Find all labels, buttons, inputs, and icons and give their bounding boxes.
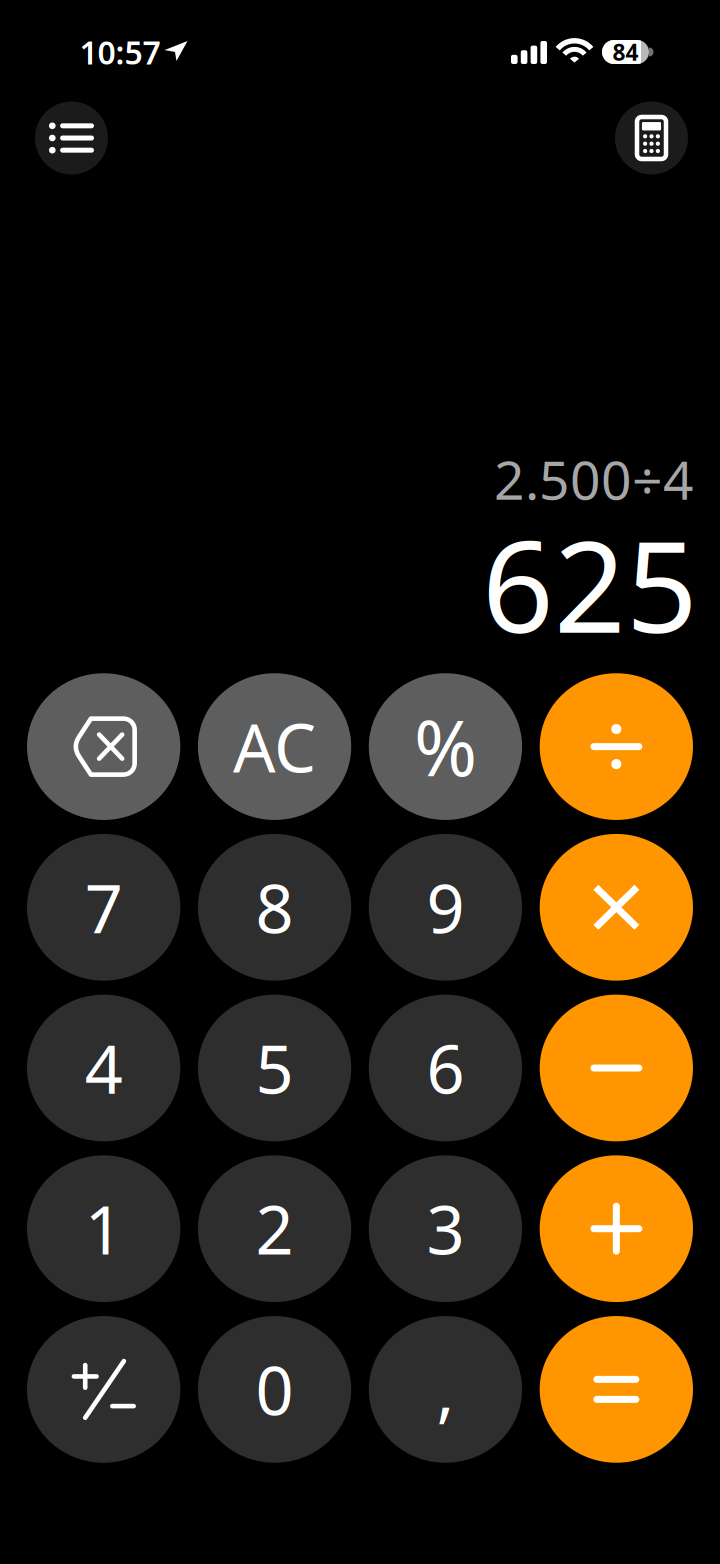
staticText: 3	[426, 1184, 464, 1273]
button[interactable]: 8	[198, 834, 351, 981]
staticText: 8	[256, 863, 294, 951]
button[interactable]: %	[369, 673, 522, 820]
staticText: 625	[482, 501, 698, 667]
staticText: 6	[426, 1024, 464, 1112]
button[interactable]: 5	[198, 995, 351, 1141]
staticText: 10:57	[79, 31, 160, 73]
staticText: 4	[85, 1024, 123, 1112]
button[interactable]: Add	[540, 1155, 693, 1302]
button[interactable]: Plus Minus	[27, 1316, 180, 1463]
button[interactable]: 7	[27, 834, 180, 981]
button[interactable]: Multiply	[540, 834, 693, 981]
button[interactable]: Delete	[27, 673, 180, 820]
staticText: AC	[233, 702, 316, 791]
button[interactable]: Calculator mode	[615, 101, 688, 174]
staticText: 84	[612, 37, 638, 67]
staticText: 9	[426, 863, 464, 951]
staticText: 0	[256, 1345, 294, 1434]
button[interactable]: History	[35, 101, 108, 174]
button[interactable]: Divide	[540, 673, 693, 820]
button[interactable]: 3	[369, 1155, 522, 1302]
button[interactable]: 1	[27, 1155, 180, 1302]
button[interactable]: Subtract	[540, 995, 693, 1141]
button[interactable]: AC	[198, 673, 351, 820]
staticText: 2.500÷4	[494, 444, 694, 514]
staticText: 2	[256, 1184, 294, 1273]
staticText: ,	[436, 1345, 454, 1434]
button[interactable]: 0	[198, 1316, 351, 1463]
staticText: 1	[85, 1184, 123, 1273]
button[interactable]: 2	[198, 1155, 351, 1302]
button[interactable]: Equals	[540, 1316, 693, 1463]
button[interactable]: 9	[369, 834, 522, 981]
button[interactable]: 4	[27, 995, 180, 1141]
staticText: 5	[256, 1024, 294, 1112]
staticText: 7	[85, 863, 123, 951]
button[interactable]: ,	[369, 1316, 522, 1463]
button[interactable]: 6	[369, 995, 522, 1141]
staticText: %	[414, 696, 477, 797]
